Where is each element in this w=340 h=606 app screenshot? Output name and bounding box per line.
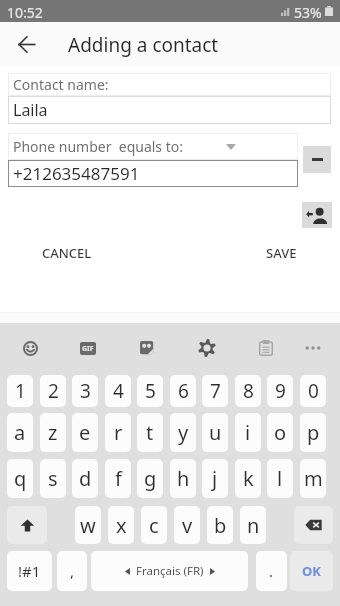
button[interactable]: s — [40, 459, 66, 498]
staticText: GIF — [82, 344, 94, 354]
staticText: y — [178, 419, 189, 446]
button[interactable]: SAVE — [251, 243, 312, 262]
staticText: m — [304, 465, 323, 492]
button[interactable]: Stickers — [129, 330, 165, 366]
button[interactable]: 8 — [235, 375, 261, 407]
button[interactable]: More options — [295, 330, 331, 366]
staticText: q — [14, 465, 27, 492]
button[interactable]: 0 — [300, 375, 326, 407]
staticText: n — [247, 512, 260, 539]
button[interactable]: 5 — [137, 375, 163, 407]
button[interactable]: c — [141, 506, 167, 544]
staticText: r — [114, 419, 123, 446]
staticText: 9 — [275, 378, 286, 404]
button[interactable]: Space, Français (FR) — [91, 551, 248, 591]
button[interactable]: 1 — [7, 375, 33, 407]
button[interactable]: h — [170, 459, 196, 498]
button[interactable]: q — [7, 459, 33, 498]
button[interactable]: Backspace — [294, 506, 333, 544]
button[interactable]: , — [57, 551, 87, 591]
button[interactable]: u — [202, 413, 228, 452]
button[interactable]: Settings — [189, 330, 225, 366]
button[interactable]: m — [300, 459, 326, 498]
staticText: Contact name: — [13, 75, 109, 94]
button[interactable]: Contact name: — [8, 73, 331, 96]
button[interactable]: x — [108, 506, 134, 544]
staticText: a — [14, 419, 26, 446]
button[interactable]: d — [72, 459, 98, 498]
staticText: 5 — [145, 378, 156, 404]
button[interactable]: Remove phone number — [303, 146, 331, 173]
staticText: w — [80, 512, 96, 539]
button[interactable]: n — [240, 506, 266, 544]
staticText: 3 — [80, 378, 91, 404]
staticText: Phone number equals to: — [13, 137, 183, 156]
staticText: 1 — [15, 378, 26, 404]
button[interactable]: i — [235, 413, 261, 452]
staticText: f — [115, 465, 122, 492]
button[interactable]: f — [105, 459, 131, 498]
button[interactable]: z — [40, 413, 66, 452]
staticText: 7 — [210, 378, 221, 404]
button[interactable]: 2 — [40, 375, 66, 407]
staticText: Adding a contact — [68, 32, 219, 58]
button[interactable]: y — [170, 413, 196, 452]
staticText: b — [214, 512, 227, 539]
staticText: 6 — [178, 378, 189, 404]
button[interactable]: Add phone number — [302, 202, 332, 228]
button[interactable]: v — [174, 506, 200, 544]
button[interactable]: t — [137, 413, 163, 452]
button[interactable]: 9 — [267, 375, 293, 407]
staticText: !#1 — [18, 561, 41, 581]
staticText: 10:52 — [7, 3, 43, 22]
button[interactable]: 7 — [202, 375, 228, 407]
staticText: 8 — [243, 378, 254, 404]
button[interactable]: p — [300, 413, 326, 452]
button[interactable]: w — [75, 506, 101, 544]
button[interactable]: GIF — [70, 330, 106, 366]
button[interactable]: 6 — [170, 375, 196, 407]
button[interactable]: e — [72, 413, 98, 452]
button[interactable]: Emoji — [12, 330, 48, 366]
staticText: +212635487591 — [13, 162, 140, 185]
staticText: , — [70, 561, 75, 581]
button[interactable]: 3 — [72, 375, 98, 407]
button[interactable]: Phone number equals to: — [8, 133, 298, 160]
button[interactable]: !#1 — [7, 551, 52, 591]
staticText: p — [307, 419, 320, 446]
button[interactable]: l — [267, 459, 293, 498]
button[interactable]: CANCEL — [27, 243, 107, 262]
button[interactable]: b — [207, 506, 233, 544]
button[interactable]: k — [235, 459, 261, 498]
button[interactable]: r — [105, 413, 131, 452]
staticText: l — [277, 465, 283, 492]
staticText: SAVE — [266, 244, 297, 262]
button[interactable]: Shift — [7, 506, 47, 544]
staticText: 53% — [294, 3, 322, 22]
staticText: j — [212, 465, 218, 492]
staticText: g — [144, 465, 157, 492]
staticText: c — [149, 512, 159, 539]
staticText: 0 — [308, 378, 319, 404]
staticText: d — [79, 465, 92, 492]
staticText: 4 — [113, 378, 124, 404]
button[interactable]: 4 — [105, 375, 131, 407]
button[interactable]: +212635487591 — [8, 160, 298, 187]
button[interactable]: g — [137, 459, 163, 498]
staticText: s — [48, 465, 58, 492]
staticText: e — [79, 419, 91, 446]
staticText: i — [245, 419, 251, 446]
button[interactable]: . — [256, 551, 287, 591]
button[interactable]: Back — [10, 28, 43, 61]
staticText: 2 — [48, 378, 59, 404]
button[interactable]: Clipboard — [248, 330, 284, 366]
button[interactable]: a — [7, 413, 33, 452]
button[interactable]: Laila — [8, 96, 331, 124]
button[interactable]: j — [202, 459, 228, 498]
staticText: Laila — [13, 99, 48, 121]
staticText: o — [274, 419, 287, 446]
button[interactable]: OK — [290, 551, 333, 591]
staticText: z — [48, 419, 58, 446]
staticText: t — [146, 419, 154, 446]
button[interactable]: o — [267, 413, 293, 452]
